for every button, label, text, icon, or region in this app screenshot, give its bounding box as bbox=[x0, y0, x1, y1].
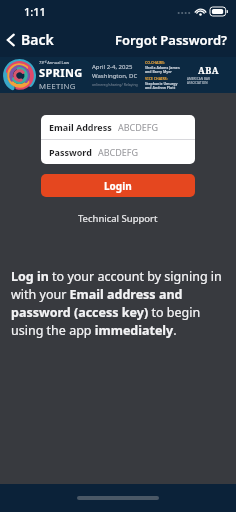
staticText: 1:11 bbox=[24, 4, 46, 19]
button[interactable]: Password bbox=[41, 140, 195, 164]
staticText: Login bbox=[104, 179, 132, 193]
staticText: onlinereg/sharing/ Relaying bbox=[92, 82, 138, 87]
staticText: ABCDEFG bbox=[98, 146, 139, 158]
staticText: VICE CHAIRS: bbox=[145, 76, 168, 81]
staticText: ABCDEFG bbox=[118, 121, 159, 133]
staticText: 73ʳᵈ Annual Law bbox=[39, 60, 70, 65]
staticText: Stephanie Umurgy and Andrew Platt bbox=[145, 81, 178, 90]
staticText: Password bbox=[49, 146, 92, 158]
button[interactable]: Email Address bbox=[41, 115, 195, 139]
staticText: Washington, DC bbox=[92, 72, 138, 80]
staticText: ABA bbox=[198, 64, 219, 76]
button[interactable]: Back bbox=[0, 26, 64, 53]
staticText: Technical Support bbox=[78, 212, 158, 225]
staticText: AMERICAN BAR ASSOCIATION bbox=[187, 77, 229, 85]
staticText: Forgot Password? bbox=[115, 31, 228, 49]
button[interactable]: Login bbox=[41, 174, 195, 197]
staticText: SPRING bbox=[39, 65, 83, 80]
staticText: CO-CHAIRS: bbox=[145, 60, 165, 65]
staticText: Back bbox=[21, 30, 54, 49]
button[interactable]: Forgot Password? bbox=[105, 27, 236, 53]
staticText: Log in to your account by signing in wit… bbox=[11, 268, 225, 339]
staticText: Email Address bbox=[49, 121, 112, 133]
staticText: Sheila Adams James and Barry Myer bbox=[145, 65, 180, 74]
staticText: April 2-4, 2025 bbox=[92, 63, 133, 71]
button[interactable]: Technical Support bbox=[66, 209, 170, 228]
staticText: MEETING bbox=[39, 80, 76, 91]
